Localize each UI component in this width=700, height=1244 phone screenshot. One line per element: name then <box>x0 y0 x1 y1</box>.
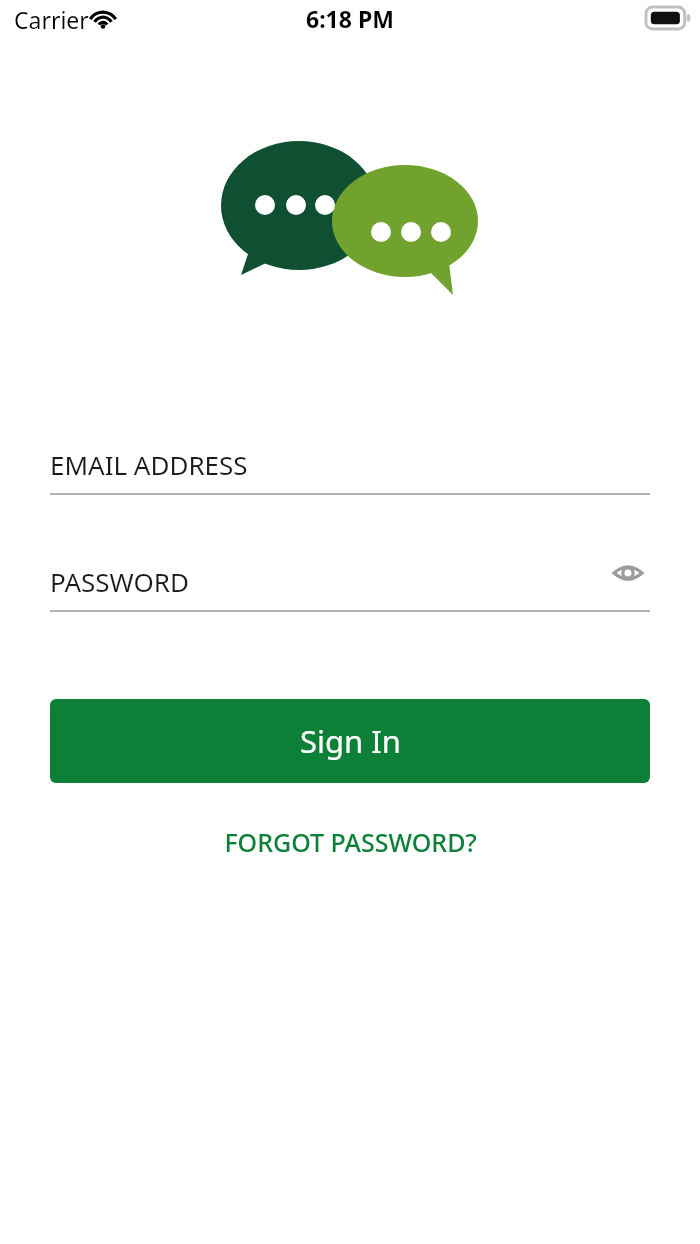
staticText: EMAIL ADDRESS <box>50 447 248 482</box>
staticText: FORGOT PASSWORD? <box>224 825 477 859</box>
staticText: 6:18 PM <box>306 3 394 34</box>
staticText: Carrier <box>14 4 89 35</box>
button[interactable]: Sign In <box>50 699 650 783</box>
staticText: PASSWORD <box>50 564 189 599</box>
button[interactable]: Show password <box>606 551 650 595</box>
staticText: Sign In <box>300 720 401 762</box>
button[interactable]: FORGOT PASSWORD? <box>212 819 489 865</box>
button[interactable]: PASSWORD <box>50 557 650 610</box>
button[interactable]: EMAIL ADDRESS <box>50 440 650 493</box>
